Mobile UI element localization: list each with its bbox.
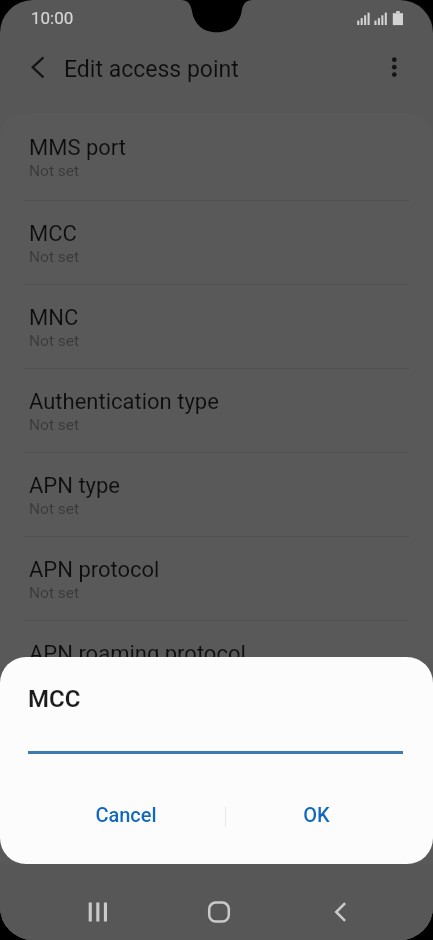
button[interactable]: Back bbox=[316, 888, 364, 936]
staticText: MNC bbox=[29, 305, 79, 331]
staticText: Edit access point bbox=[64, 56, 239, 83]
button[interactable]: MCC bbox=[0, 201, 433, 284]
button[interactable]: APN type bbox=[0, 453, 433, 536]
button[interactable]: APN protocol bbox=[0, 537, 433, 620]
staticText: OK bbox=[303, 803, 330, 826]
staticText: Authentication type bbox=[29, 389, 219, 415]
button[interactable]: MNC bbox=[0, 285, 433, 368]
staticText: Not set bbox=[29, 248, 80, 266]
button[interactable]: Home bbox=[195, 888, 243, 936]
staticText: Not set bbox=[29, 332, 80, 350]
staticText: APN roaming protocol bbox=[29, 641, 246, 667]
staticText: APN protocol bbox=[29, 557, 160, 583]
staticText: MCC bbox=[28, 685, 81, 713]
button[interactable]: Authentication type bbox=[0, 369, 433, 452]
staticText: Not set bbox=[29, 584, 80, 602]
button[interactable]: MMS port bbox=[0, 113, 433, 200]
staticText: Not set bbox=[29, 162, 80, 180]
button[interactable]: APN roaming protocol bbox=[0, 621, 433, 704]
staticText: Cancel bbox=[95, 803, 157, 826]
staticText: Not set bbox=[29, 416, 80, 434]
staticText: MMS port bbox=[29, 135, 127, 161]
staticText: 10:00 bbox=[31, 8, 74, 28]
button[interactable]: More options bbox=[373, 55, 415, 97]
staticText: Not set bbox=[29, 500, 80, 518]
button[interactable]: Back bbox=[18, 55, 57, 94]
button[interactable]: Recents bbox=[72, 888, 120, 936]
staticText: MCC bbox=[29, 221, 77, 247]
staticText: APN type bbox=[29, 473, 121, 499]
button[interactable]: Cancel bbox=[33, 791, 218, 837]
button[interactable]: OK bbox=[226, 791, 406, 837]
